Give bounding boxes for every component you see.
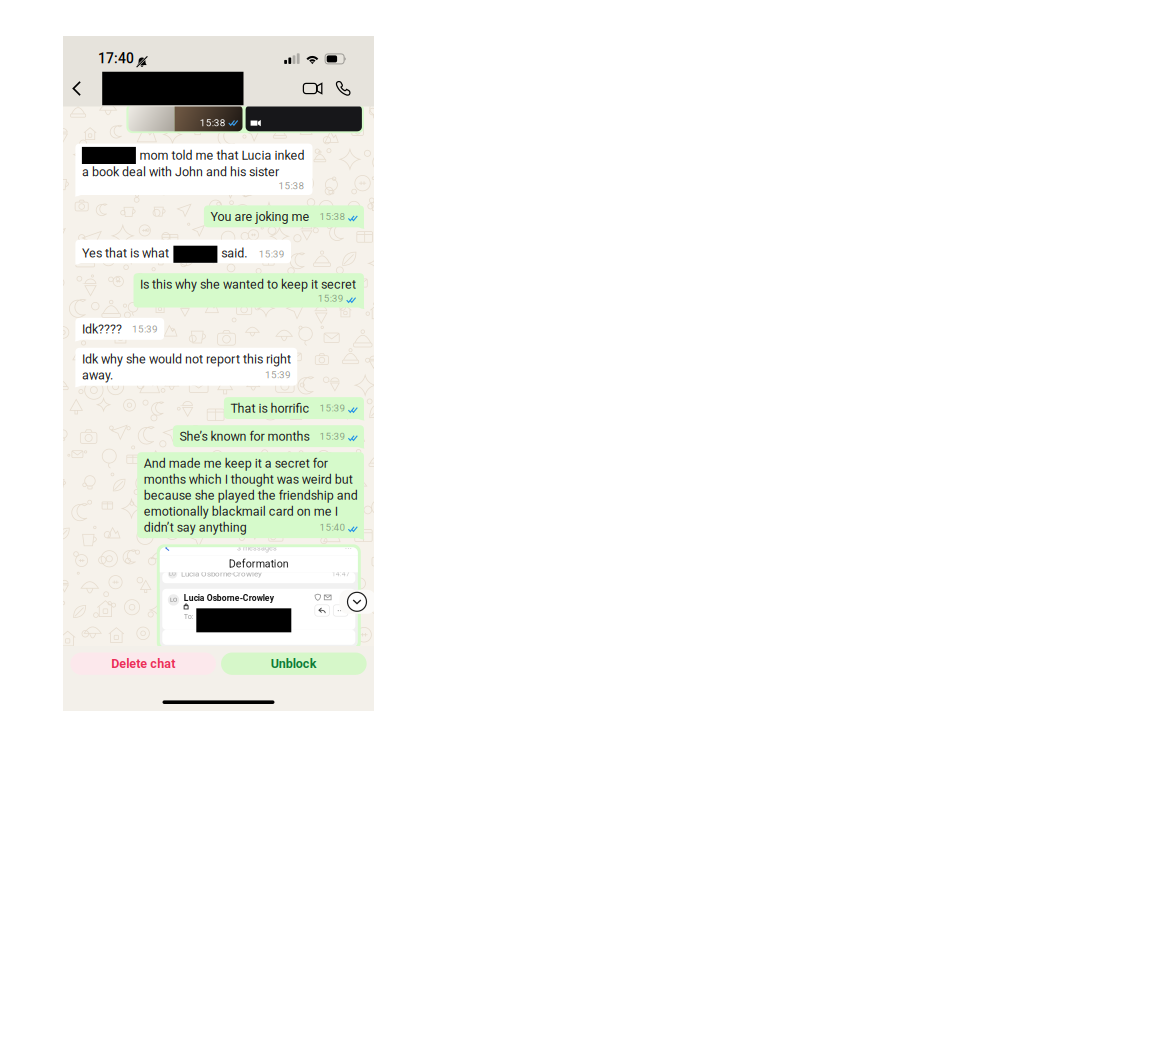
staticText: 15:38 — [200, 117, 226, 129]
staticText: LO — [170, 596, 177, 603]
staticText: 17:40 — [98, 50, 134, 67]
staticText: LO — [169, 570, 176, 577]
button[interactable]: Delete chat — [70, 652, 216, 675]
staticText: 15:39 — [319, 402, 345, 414]
staticText: ⋯ — [345, 544, 352, 552]
staticText: 15:39 — [259, 248, 285, 260]
staticText: mom told me that Lucia inked — [139, 148, 304, 163]
staticText: Deformation — [229, 557, 289, 570]
staticText: emotionally blackmail card on me I — [144, 504, 338, 519]
staticText: 15:38 — [278, 180, 304, 192]
staticText: 15:40 — [319, 521, 345, 533]
button[interactable]: Video call — [292, 71, 327, 106]
staticText: And made me keep it a secret for — [144, 456, 328, 471]
staticText: Idk???? — [82, 322, 122, 337]
staticText: 15:39 — [132, 323, 158, 335]
button[interactable]: Scroll to latest message — [347, 592, 366, 611]
staticText: because she played the friendship and — [144, 488, 358, 503]
staticText: Yes that is what — [82, 246, 169, 261]
staticText: 15:39 — [132, 323, 158, 335]
staticText: Delete chat — [111, 656, 175, 671]
staticText: To: — [184, 612, 194, 621]
staticText: away. — [82, 368, 113, 382]
staticText: 15:39 — [319, 430, 345, 442]
staticText: didn’t say anything — [144, 520, 247, 535]
staticText: 3 messages — [237, 544, 277, 552]
staticText: 15:39 — [265, 369, 291, 381]
button[interactable]: Back — [63, 71, 94, 106]
staticText: She’s known for months — [179, 429, 309, 444]
staticText: 15:39 — [319, 402, 345, 414]
staticText: Idk why she would not report this right — [82, 352, 291, 366]
staticText: Is this why she wanted to keep it secret — [140, 277, 356, 292]
staticText: That is horrific — [230, 401, 309, 416]
staticText: Lucia Osborne-Crowley — [184, 593, 274, 603]
button[interactable]: Unblock — [221, 652, 367, 675]
staticText: 15:39 — [265, 369, 291, 381]
button[interactable]: Voice call — [327, 71, 358, 106]
staticText: ⋯ — [337, 606, 344, 615]
staticText: 15:40 — [319, 521, 345, 533]
staticText: 15:38 — [319, 211, 345, 222]
staticText: 14:47 — [332, 570, 350, 578]
staticText: months which I thought was weird but — [144, 472, 353, 487]
staticText: Lucia Osborne-Crowley — [181, 569, 262, 578]
staticText: a book deal with John and his sister — [82, 165, 279, 179]
staticText: You are joking me — [210, 209, 309, 224]
staticText: said. — [221, 246, 247, 261]
staticText: 15:38 — [319, 211, 345, 222]
staticText: 15:39 — [319, 430, 345, 442]
staticText: Unblock — [271, 656, 317, 671]
staticText: 15:39 — [318, 292, 344, 304]
